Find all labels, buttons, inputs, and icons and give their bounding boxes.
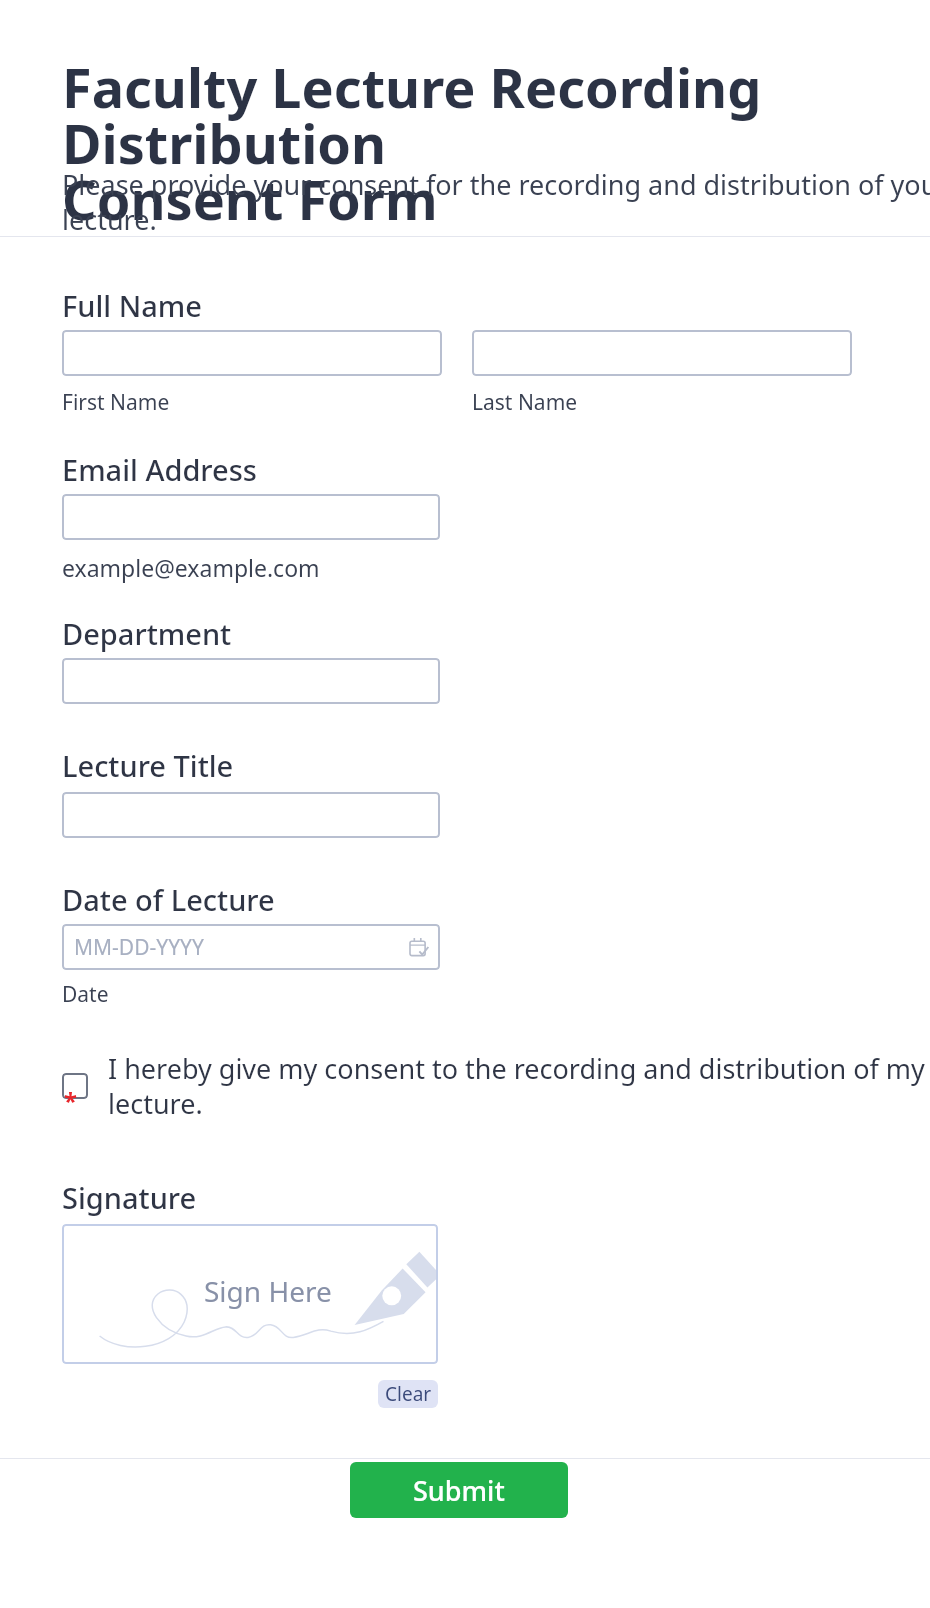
staticText: Signature bbox=[62, 1178, 197, 1217]
staticText: Sign Here bbox=[204, 1272, 332, 1310]
staticText: example@example.com bbox=[62, 552, 320, 583]
staticText: Submit bbox=[413, 1472, 505, 1509]
button[interactable]: Lecture Title bbox=[62, 792, 440, 838]
staticText: Email Address bbox=[62, 450, 257, 489]
staticText: * bbox=[64, 1084, 78, 1117]
staticText: Lecture Title bbox=[62, 746, 234, 785]
button[interactable]: First Name bbox=[62, 330, 442, 376]
button[interactable]: Sign Here bbox=[62, 1224, 438, 1364]
staticText: Date bbox=[62, 980, 109, 1009]
staticText: Date of Lecture bbox=[62, 880, 275, 919]
button[interactable]: Submit bbox=[350, 1462, 568, 1518]
staticText: First Name bbox=[62, 388, 170, 417]
staticText: Last Name bbox=[472, 388, 578, 417]
staticText: MM-DD-YYYY bbox=[74, 933, 204, 962]
staticText: Clear bbox=[385, 1381, 432, 1407]
button[interactable]: Clear bbox=[378, 1380, 438, 1408]
button[interactable]: Email Address bbox=[62, 494, 440, 540]
button[interactable]: I hereby give my consent to the recordin… bbox=[62, 1050, 930, 1121]
button[interactable]: Department bbox=[62, 658, 440, 704]
staticText: Department bbox=[62, 614, 232, 653]
staticText: I hereby give my consent to the recordin… bbox=[108, 1050, 930, 1121]
button[interactable]: Date of Lecture bbox=[62, 924, 440, 970]
staticText: Please provide your consent for the reco… bbox=[62, 166, 930, 237]
staticText: Full Name bbox=[62, 286, 202, 325]
button[interactable]: Last Name bbox=[472, 330, 852, 376]
staticText: Faculty Lecture Recording Distribution C… bbox=[62, 50, 862, 236]
